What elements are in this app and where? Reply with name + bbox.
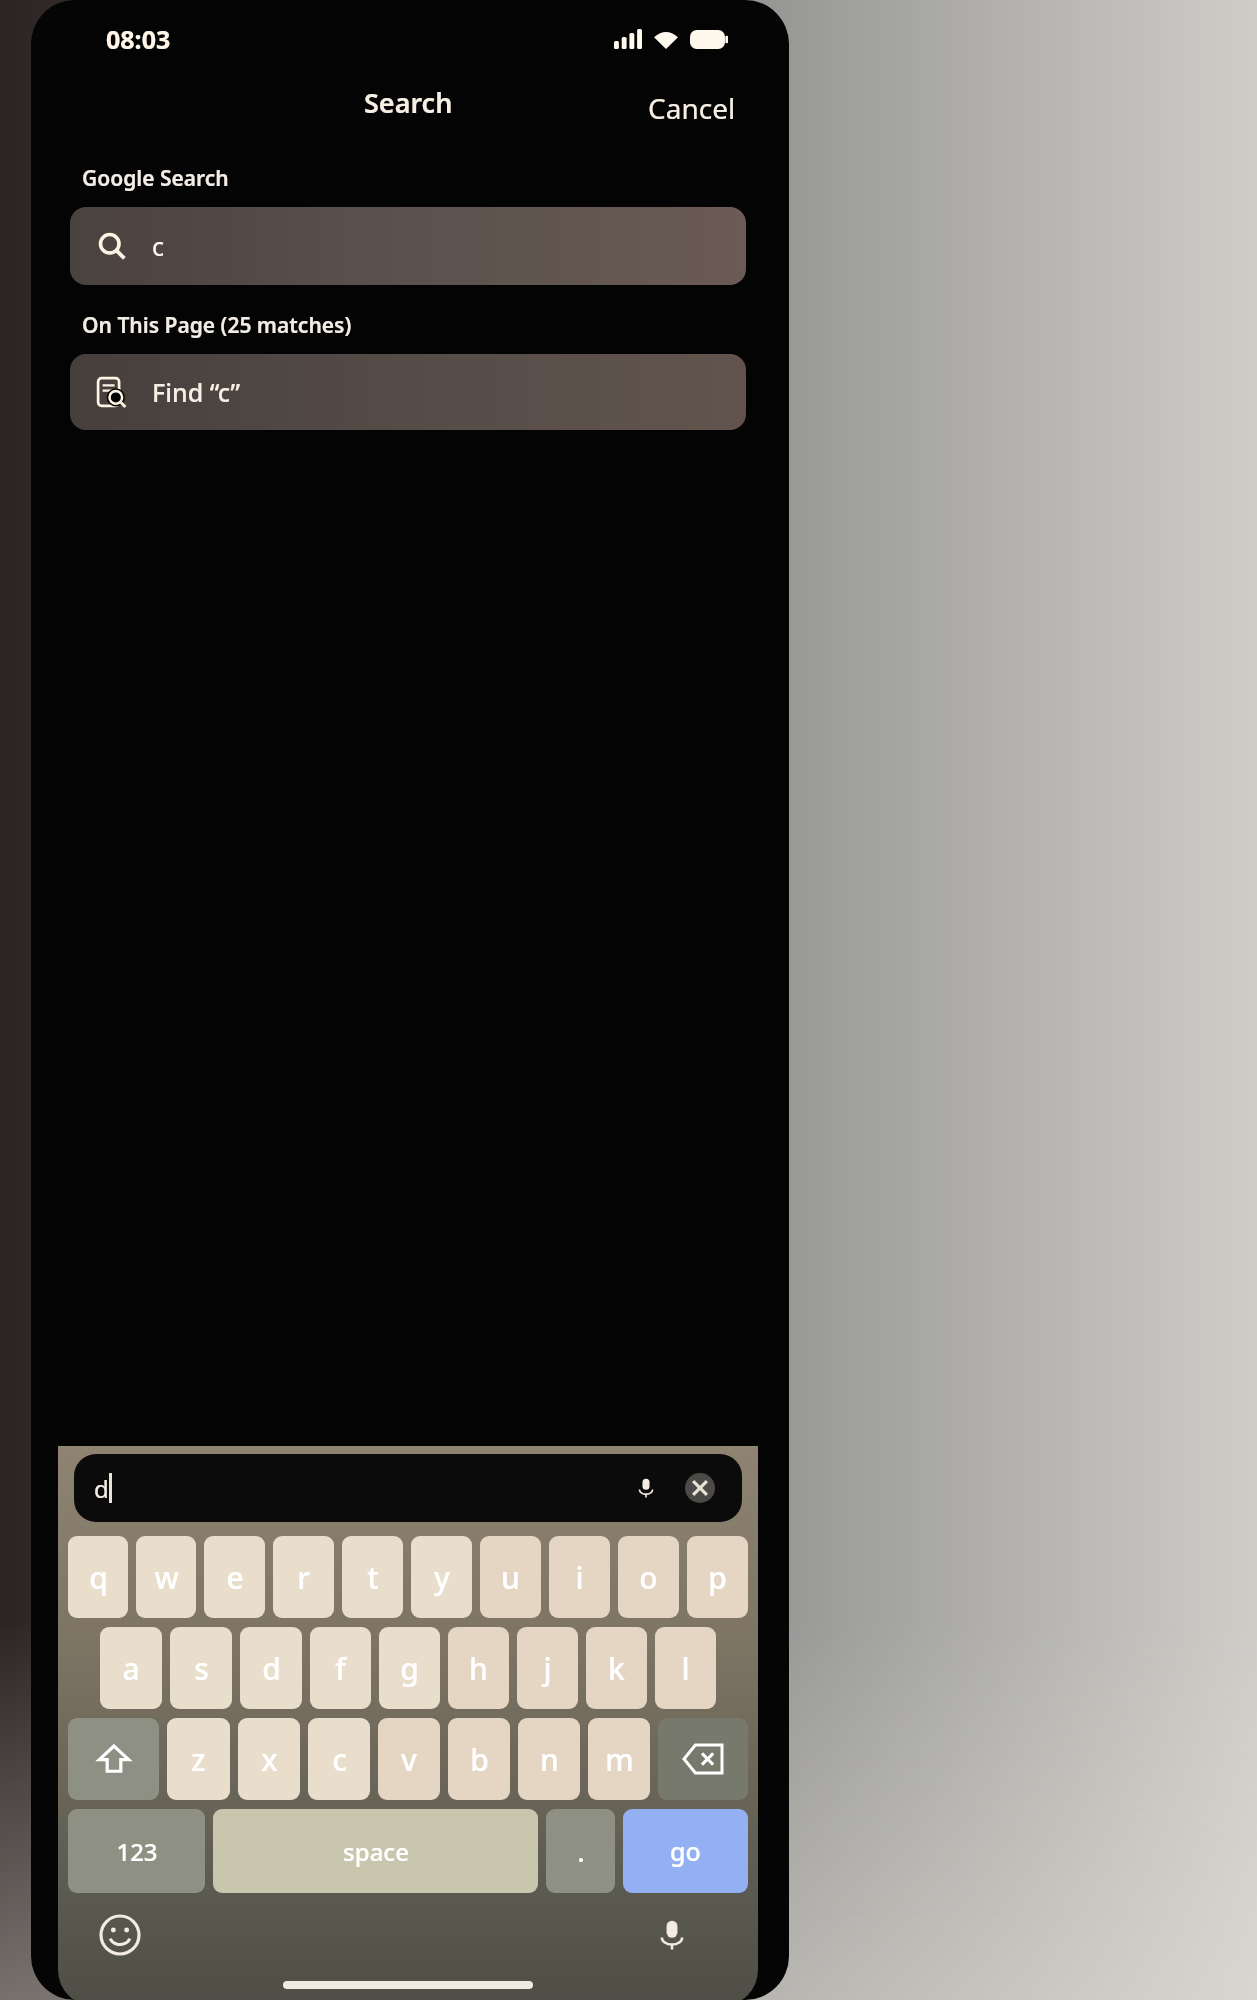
button[interactable]: k bbox=[586, 1627, 647, 1709]
staticText: w bbox=[154, 1557, 179, 1598]
staticText: space bbox=[343, 1835, 409, 1868]
button[interactable]: m bbox=[588, 1718, 650, 1800]
button[interactable]: Voice input bbox=[624, 1466, 668, 1510]
staticText: a bbox=[122, 1648, 140, 1689]
staticText: d bbox=[94, 1472, 109, 1505]
button[interactable]: Clear text bbox=[678, 1466, 722, 1510]
staticText: k bbox=[608, 1648, 625, 1689]
button[interactable]: Find “c” bbox=[70, 354, 746, 430]
button[interactable]: w bbox=[136, 1536, 196, 1618]
button[interactable]: go bbox=[623, 1809, 748, 1893]
staticText: 08:03 bbox=[106, 22, 171, 56]
staticText: s bbox=[194, 1648, 209, 1689]
button[interactable]: r bbox=[273, 1536, 334, 1618]
staticText: Find “c” bbox=[152, 375, 241, 409]
button[interactable]: j bbox=[517, 1627, 578, 1709]
button[interactable]: Backspace bbox=[658, 1718, 748, 1800]
staticText: n bbox=[540, 1739, 559, 1780]
button[interactable]: y bbox=[411, 1536, 472, 1618]
staticText: x bbox=[261, 1739, 278, 1780]
button[interactable]: v bbox=[378, 1718, 440, 1800]
staticText: Search bbox=[364, 84, 453, 121]
staticText: e bbox=[226, 1557, 244, 1598]
staticText: c bbox=[332, 1739, 347, 1780]
button[interactable]: Cancel bbox=[634, 81, 750, 135]
staticText: z bbox=[191, 1739, 206, 1780]
button[interactable]: d bbox=[240, 1627, 302, 1709]
staticText: q bbox=[89, 1557, 108, 1598]
staticText: On This Page (25 matches) bbox=[82, 311, 352, 340]
staticText: u bbox=[501, 1557, 520, 1598]
staticText: 123 bbox=[116, 1835, 158, 1868]
button[interactable]: p bbox=[687, 1536, 748, 1618]
button[interactable]: i bbox=[549, 1536, 610, 1618]
staticText: p bbox=[708, 1557, 727, 1598]
button[interactable]: t bbox=[342, 1536, 403, 1618]
button[interactable]: Shift bbox=[68, 1718, 159, 1800]
staticText: g bbox=[400, 1648, 419, 1689]
button[interactable]: d bbox=[74, 1454, 742, 1522]
staticText: m bbox=[605, 1739, 634, 1780]
staticText: Google Search bbox=[82, 164, 229, 193]
button[interactable]: g bbox=[379, 1627, 440, 1709]
button[interactable]: h bbox=[448, 1627, 509, 1709]
staticText: h bbox=[469, 1648, 488, 1689]
button[interactable]: x bbox=[238, 1718, 300, 1800]
staticText: Cancel bbox=[648, 89, 736, 127]
button[interactable]: e bbox=[204, 1536, 265, 1618]
staticText: i bbox=[575, 1557, 584, 1598]
button[interactable]: Voice typing bbox=[648, 1911, 696, 1959]
button[interactable]: l bbox=[655, 1627, 716, 1709]
button[interactable]: f bbox=[310, 1627, 371, 1709]
staticText: l bbox=[681, 1648, 690, 1689]
staticText: o bbox=[639, 1557, 658, 1598]
staticText: j bbox=[543, 1648, 552, 1689]
button[interactable]: a bbox=[100, 1627, 162, 1709]
button[interactable]: c bbox=[308, 1718, 370, 1800]
button[interactable]: n bbox=[518, 1718, 580, 1800]
staticText: b bbox=[470, 1739, 489, 1780]
button[interactable]: q bbox=[68, 1536, 128, 1618]
button[interactable]: c bbox=[70, 207, 746, 285]
staticText: r bbox=[297, 1557, 310, 1598]
button[interactable]: . bbox=[546, 1809, 615, 1893]
staticText: d bbox=[262, 1648, 281, 1689]
button[interactable]: o bbox=[618, 1536, 679, 1618]
staticText: y bbox=[434, 1557, 450, 1598]
button[interactable]: b bbox=[448, 1718, 510, 1800]
button[interactable]: z bbox=[167, 1718, 230, 1800]
staticText: f bbox=[335, 1648, 346, 1689]
staticText: . bbox=[577, 1834, 585, 1869]
button[interactable]: space bbox=[213, 1809, 538, 1893]
button[interactable]: 123 bbox=[68, 1809, 205, 1893]
staticText: c bbox=[152, 229, 165, 263]
staticText: v bbox=[401, 1739, 417, 1780]
button[interactable]: s bbox=[170, 1627, 232, 1709]
button[interactable]: Emoji bbox=[96, 1911, 144, 1959]
button[interactable]: u bbox=[480, 1536, 541, 1618]
staticText: t bbox=[367, 1557, 379, 1598]
staticText: go bbox=[670, 1834, 701, 1868]
